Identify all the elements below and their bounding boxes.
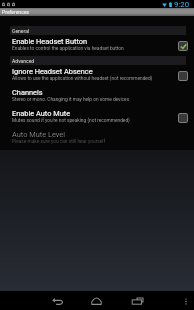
button[interactable]: Ignore Headset Absence bbox=[0, 65, 194, 86]
button[interactable]: More options bbox=[176, 292, 194, 310]
staticText: Auto Mute Level bbox=[12, 130, 66, 139]
button[interactable]: Preferences bbox=[0, 8, 194, 16]
button[interactable]: Auto Mute Level bbox=[0, 128, 194, 149]
button[interactable]: Home bbox=[76, 292, 116, 310]
staticText: General bbox=[12, 28, 30, 34]
button[interactable]: Checked bbox=[178, 41, 188, 51]
button[interactable]: Back bbox=[37, 292, 77, 310]
staticText: Channels bbox=[12, 88, 43, 97]
staticText: Allows to use the application without he… bbox=[12, 76, 153, 82]
staticText: 9:20 bbox=[174, 0, 190, 8]
staticText: Enable Auto Mute bbox=[12, 109, 71, 118]
staticText: Stereo or mono. Changing it may help on … bbox=[12, 97, 130, 103]
button[interactable]: Enable Auto Mute bbox=[0, 107, 194, 128]
button[interactable]: Unchecked bbox=[178, 113, 188, 123]
staticText: Enables to control the application via h… bbox=[12, 46, 124, 52]
staticText: Please make sure you can still hear your… bbox=[12, 139, 106, 145]
staticText: Mutes sound if you're not speaking (not … bbox=[12, 118, 130, 124]
staticText: Enable Headset Button bbox=[12, 37, 88, 46]
staticText: Ignore Headset Absence bbox=[12, 67, 93, 76]
button[interactable]: Enable Headset Button bbox=[0, 35, 194, 56]
button[interactable]: Recent apps bbox=[117, 292, 157, 310]
staticText: Preferences bbox=[2, 9, 30, 15]
button[interactable]: Channels bbox=[0, 86, 194, 107]
staticText: Advanced bbox=[12, 58, 35, 64]
button[interactable]: Unchecked bbox=[178, 71, 188, 81]
